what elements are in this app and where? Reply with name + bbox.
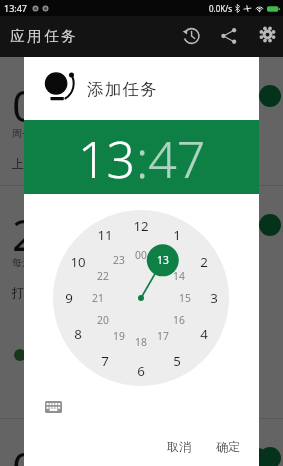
button[interactable]: 9 (65, 289, 73, 307)
button[interactable]: :47 (136, 125, 206, 193)
staticText: 22 (97, 269, 109, 283)
button[interactable]: 1 (173, 226, 181, 244)
button[interactable]: Switch to text input (41, 395, 65, 419)
staticText: 11 (97, 226, 113, 244)
button[interactable]: 11 (97, 226, 113, 244)
button[interactable]: 15 (179, 291, 191, 305)
staticText: 16 (173, 313, 185, 327)
staticText: 0.0K/s (209, 3, 233, 14)
button[interactable]: 19 (113, 329, 125, 343)
button[interactable]: 8 (74, 325, 82, 343)
button[interactable]: 22:30 (0, 186, 283, 419)
staticText: 12 (133, 217, 149, 235)
staticText: 确定 (216, 439, 240, 454)
button[interactable]: 21 (92, 291, 104, 305)
button[interactable]: 确定 (206, 431, 250, 462)
button[interactable]: 13 (157, 253, 169, 267)
button[interactable]: 20 (97, 313, 109, 327)
staticText: 14 (173, 269, 185, 283)
button[interactable]: 16 (173, 313, 185, 327)
button[interactable]: 13 (78, 125, 136, 193)
button[interactable]: 07:30 (0, 57, 283, 186)
staticText: 2 (200, 253, 208, 271)
button[interactable]: 7 (101, 352, 109, 370)
staticText: 10 (70, 253, 86, 271)
staticText: 7 (101, 352, 109, 370)
staticText: 6 (137, 362, 145, 380)
button[interactable]: 09:00 (0, 419, 283, 466)
staticText: 15 (179, 291, 191, 305)
staticText: 打卡下班提醒 (12, 285, 84, 300)
button[interactable]: Alarm (42, 68, 78, 104)
staticText: 20 (97, 313, 109, 327)
staticText: 取消 (167, 439, 191, 454)
staticText: 每天 (12, 256, 32, 269)
staticText: 13 (157, 253, 169, 267)
button[interactable]: 00 (135, 248, 147, 262)
button[interactable]: 18 (135, 335, 147, 349)
button[interactable]: 10 (70, 253, 86, 271)
staticText: 22:30 (12, 204, 125, 264)
button[interactable]: 应用任务 (10, 27, 79, 45)
staticText: 00 (135, 248, 147, 262)
staticText: 07:30 (12, 75, 125, 135)
button[interactable]: 14 (173, 269, 185, 283)
staticText: 1 (173, 226, 181, 244)
staticText: 添加任务 (87, 79, 158, 100)
staticText: 21 (92, 291, 104, 305)
staticText: 应用任务 (10, 27, 79, 45)
staticText: :47 (136, 125, 206, 193)
button[interactable]: Settings (249, 16, 283, 57)
button[interactable]: 取消 (157, 431, 201, 462)
button[interactable]: History (173, 16, 209, 57)
staticText: 8 (74, 325, 82, 343)
button[interactable]: 3 (210, 289, 218, 307)
staticText: 上班打卡提醒 (12, 156, 84, 171)
button[interactable]: 17 (157, 329, 169, 343)
staticText: 23 (113, 253, 125, 267)
staticText: 每天重复执行提醒任务会自动提醒 (34, 347, 214, 362)
staticText: 9 (65, 289, 73, 307)
button[interactable]: 2 (200, 253, 208, 271)
button[interactable]: Add task (232, 447, 274, 466)
staticText: 09:00 (12, 437, 125, 466)
staticText: 3 (210, 289, 218, 307)
staticText: 19 (113, 329, 125, 343)
button[interactable]: 6 (137, 362, 145, 380)
button[interactable]: Share (211, 16, 247, 57)
button[interactable]: 23 (113, 253, 125, 267)
button[interactable]: 4 (200, 325, 208, 343)
staticText: 5 (173, 352, 181, 370)
staticText: 17 (157, 329, 169, 343)
button[interactable]: 5 (173, 352, 181, 370)
staticText: 13:47 (4, 2, 28, 14)
staticText: 4 (200, 325, 208, 343)
button[interactable]: 添加任务 (87, 79, 158, 100)
staticText: 13 (78, 125, 136, 193)
button[interactable]: 12 (133, 217, 149, 235)
button[interactable]: 22 (97, 269, 109, 283)
staticText: 18 (135, 335, 147, 349)
staticText: 周一至周五 (12, 127, 62, 140)
